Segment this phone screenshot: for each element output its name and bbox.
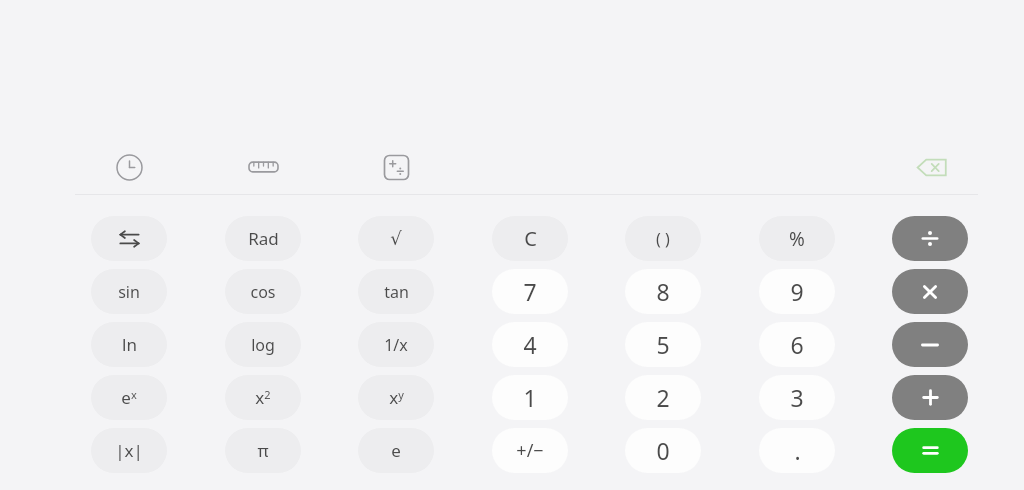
button[interactable]: ln [91, 322, 167, 367]
staticText: 0 [656, 435, 670, 466]
staticText: log [251, 334, 275, 356]
button[interactable]: C [492, 216, 568, 261]
staticText: e [391, 439, 401, 462]
button[interactable]: 4 [492, 322, 568, 367]
button[interactable]: ex [91, 375, 167, 420]
button[interactable]: 5 [625, 322, 701, 367]
staticText: Rad [248, 227, 279, 250]
button[interactable]: Scientific mode [377, 148, 415, 186]
button[interactable]: 7 [492, 269, 568, 314]
staticText: % [789, 226, 805, 252]
button[interactable]: . [759, 428, 835, 473]
staticText: xy [389, 386, 404, 409]
button[interactable]: 1/x [358, 322, 434, 367]
staticText: 1/x [384, 334, 408, 356]
button[interactable]: sin [91, 269, 167, 314]
staticText: 7 [523, 276, 537, 307]
button[interactable]: Add [892, 375, 968, 420]
button[interactable]: +/− [492, 428, 568, 473]
staticText: π [257, 439, 269, 462]
staticText: cos [250, 281, 276, 303]
button[interactable]: Rad [225, 216, 301, 261]
button[interactable]: tan [358, 269, 434, 314]
staticText: ( ) [656, 228, 670, 250]
staticText: 8 [656, 276, 670, 307]
button[interactable]: |x| [91, 428, 167, 473]
button[interactable]: 2 [625, 375, 701, 420]
button[interactable]: 3 [759, 375, 835, 420]
button[interactable]: π [225, 428, 301, 473]
staticText: C [524, 225, 537, 252]
staticText: sin [118, 281, 140, 303]
staticText: |x| [115, 439, 143, 462]
button[interactable]: Equals [892, 428, 968, 473]
staticText: 1 [523, 382, 537, 413]
staticText: 9 [790, 276, 804, 307]
button[interactable]: 1 [492, 375, 568, 420]
button[interactable]: cos [225, 269, 301, 314]
staticText: 3 [790, 382, 804, 413]
button[interactable]: xy [358, 375, 434, 420]
button[interactable]: x2 [225, 375, 301, 420]
button[interactable]: 6 [759, 322, 835, 367]
staticText: 5 [656, 329, 670, 360]
staticText: √ [390, 228, 402, 249]
staticText: x2 [255, 386, 271, 409]
staticText: ex [121, 386, 137, 409]
staticText: tan [384, 281, 409, 303]
button[interactable]: 9 [759, 269, 835, 314]
button[interactable]: % [759, 216, 835, 261]
button[interactable]: 8 [625, 269, 701, 314]
button[interactable]: Backspace [908, 150, 956, 184]
button[interactable]: Swap units [91, 216, 167, 261]
staticText: 2 [656, 382, 670, 413]
button[interactable]: log [225, 322, 301, 367]
staticText: +/− [516, 438, 544, 463]
button[interactable]: √ [358, 216, 434, 261]
staticText: 4 [523, 329, 537, 360]
button[interactable]: Divide [892, 216, 968, 261]
button[interactable]: e [358, 428, 434, 473]
button[interactable]: ( ) [625, 216, 701, 261]
button[interactable]: Unit converter [243, 148, 283, 186]
button[interactable]: Subtract [892, 322, 968, 367]
button[interactable]: Multiply [892, 269, 968, 314]
staticText: . [794, 435, 801, 466]
button[interactable]: History [110, 148, 148, 186]
staticText: 6 [790, 329, 804, 360]
button[interactable]: 0 [625, 428, 701, 473]
staticText: ln [122, 333, 137, 356]
